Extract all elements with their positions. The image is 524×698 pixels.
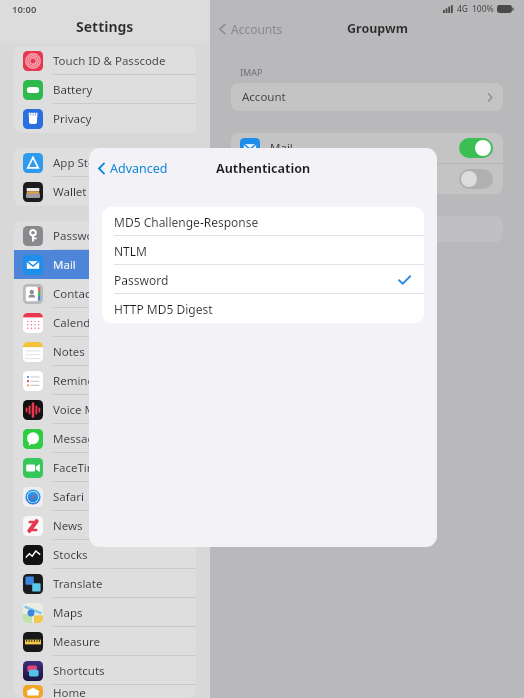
button[interactable]: Off: [240, 164, 493, 194]
staticText: Advanced: [110, 160, 168, 177]
button[interactable]: HTTP MD5 Digest: [102, 294, 424, 323]
button[interactable]: Privacy: [14, 104, 196, 133]
button[interactable]: Advanced: [97, 160, 168, 177]
button[interactable]: Mail: [240, 133, 493, 163]
staticText: Stocks: [53, 547, 88, 563]
button[interactable]: Maps: [14, 598, 196, 627]
button[interactable]: Stocks: [14, 540, 196, 569]
button[interactable]: Accounts: [218, 21, 283, 37]
staticText: Account: [242, 89, 286, 105]
staticText: Password: [114, 272, 169, 288]
staticText: Home: [53, 685, 86, 698]
staticText: NTLM: [114, 243, 147, 259]
staticText: HTTP MD5 Digest: [114, 301, 213, 317]
staticText: Passwords: [53, 228, 111, 244]
staticText: Calendar: [53, 315, 102, 331]
button[interactable]: Off: [459, 169, 493, 189]
button[interactable]: FaceTime: [14, 453, 196, 482]
staticText: Voice Memos: [53, 402, 125, 418]
staticText: Authentication: [216, 160, 311, 177]
staticText: 10:00: [12, 3, 37, 16]
button[interactable]: News: [14, 511, 196, 540]
staticText: Shortcuts: [53, 663, 105, 679]
button[interactable]: Wallet & Apple Pay: [14, 177, 196, 206]
button[interactable]: Translate: [14, 569, 196, 598]
staticText: IMAP: [240, 66, 263, 78]
staticText: Mail: [53, 257, 76, 273]
button[interactable]: Shortcuts: [14, 656, 196, 685]
button[interactable]: [231, 216, 503, 242]
staticText: App Store: [53, 155, 106, 171]
staticText: Maps: [53, 605, 83, 621]
button[interactable]: Messages: [14, 424, 196, 453]
staticText: Translate: [53, 576, 103, 592]
button[interactable]: Password: [102, 265, 424, 294]
button[interactable]: Notes: [14, 337, 196, 366]
staticText: Notes: [53, 344, 85, 360]
button[interactable]: Touch ID & Passcode: [14, 46, 196, 75]
staticText: Accounts: [231, 21, 283, 37]
staticText: Measure: [53, 634, 100, 650]
staticText: Messages: [53, 431, 107, 447]
staticText: Safari: [53, 489, 84, 505]
button[interactable]: Reminders: [14, 366, 196, 395]
button[interactable]: On: [459, 138, 493, 158]
button[interactable]: Voice Memos: [14, 395, 196, 424]
staticText: Reminders: [53, 373, 112, 389]
staticText: Contacts: [53, 286, 101, 302]
button[interactable]: NTLM: [102, 236, 424, 265]
button[interactable]: Battery: [14, 75, 196, 104]
button[interactable]: Account: [231, 83, 503, 111]
staticText: Privacy: [53, 111, 92, 127]
staticText: FaceTime: [53, 460, 105, 476]
staticText: 100%: [472, 3, 494, 15]
staticText: Wallet & Apple Pay: [53, 184, 155, 200]
staticText: Settings: [76, 17, 134, 36]
staticText: Touch ID & Passcode: [53, 53, 166, 69]
staticText: 4G: [457, 3, 469, 15]
button[interactable]: Passwords: [14, 221, 196, 250]
staticText: Mail: [270, 140, 459, 156]
staticText: Battery: [53, 82, 93, 98]
staticText: News: [53, 518, 83, 534]
staticText: Groupwm: [347, 20, 408, 37]
button[interactable]: MD5 Challenge-Response: [102, 207, 424, 236]
button[interactable]: Measure: [14, 627, 196, 656]
button[interactable]: App Store: [14, 148, 196, 177]
button[interactable]: Contacts: [14, 279, 196, 308]
button[interactable]: Safari: [14, 482, 196, 511]
button[interactable]: Mail: [14, 250, 196, 279]
button[interactable]: Calendar: [14, 308, 196, 337]
staticText: MD5 Challenge-Response: [114, 214, 259, 230]
button[interactable]: Home: [14, 685, 196, 698]
